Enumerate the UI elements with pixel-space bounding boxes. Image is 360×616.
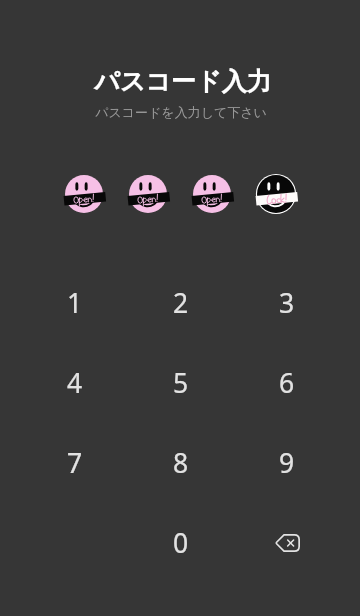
button[interactable]: 4: [22, 343, 128, 423]
staticText: 4: [67, 365, 83, 401]
button[interactable]: 3: [234, 263, 340, 343]
staticText: 5: [173, 365, 189, 401]
staticText: 6: [279, 365, 295, 401]
button[interactable]: Delete: [234, 503, 340, 583]
staticText: 7: [67, 445, 83, 481]
staticText: 0: [173, 525, 189, 561]
button[interactable]: 7: [22, 423, 128, 503]
button[interactable]: 0: [128, 503, 234, 583]
staticText: パスコードを入力して下さい: [95, 104, 267, 120]
button[interactable]: 1: [22, 263, 128, 343]
staticText: 3: [279, 285, 295, 321]
staticText: 2: [173, 285, 189, 321]
button[interactable]: 8: [128, 423, 234, 503]
button[interactable]: 6: [234, 343, 340, 423]
button[interactable]: 5: [128, 343, 234, 423]
staticText: パスコード入力: [94, 66, 272, 97]
staticText: 9: [279, 445, 295, 481]
button[interactable]: 2: [128, 263, 234, 343]
staticText: 8: [173, 445, 189, 481]
button[interactable]: 9: [234, 423, 340, 503]
staticText: 1: [67, 285, 83, 321]
